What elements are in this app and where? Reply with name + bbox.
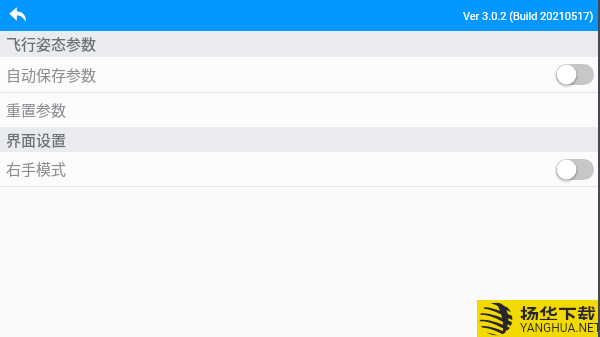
staticText: 扬华下载	[520, 301, 597, 320]
staticText: 右手模式	[6, 158, 67, 180]
staticText: 界面设置	[6, 129, 67, 151]
button[interactable]: 重置参数	[0, 93, 600, 127]
staticText: Ver 3.0.2 (Build 20210517)	[463, 10, 594, 23]
staticText: 自动保存参数	[6, 64, 97, 86]
button[interactable]: Back	[0, 0, 34, 31]
staticText: 飞行姿态参数	[6, 33, 97, 55]
button[interactable]: 自动保存参数	[0, 57, 600, 92]
staticText: YANGHUA.NET	[520, 321, 600, 332]
staticText: 重置参数	[6, 99, 67, 121]
button[interactable]: 右手模式	[0, 152, 600, 186]
